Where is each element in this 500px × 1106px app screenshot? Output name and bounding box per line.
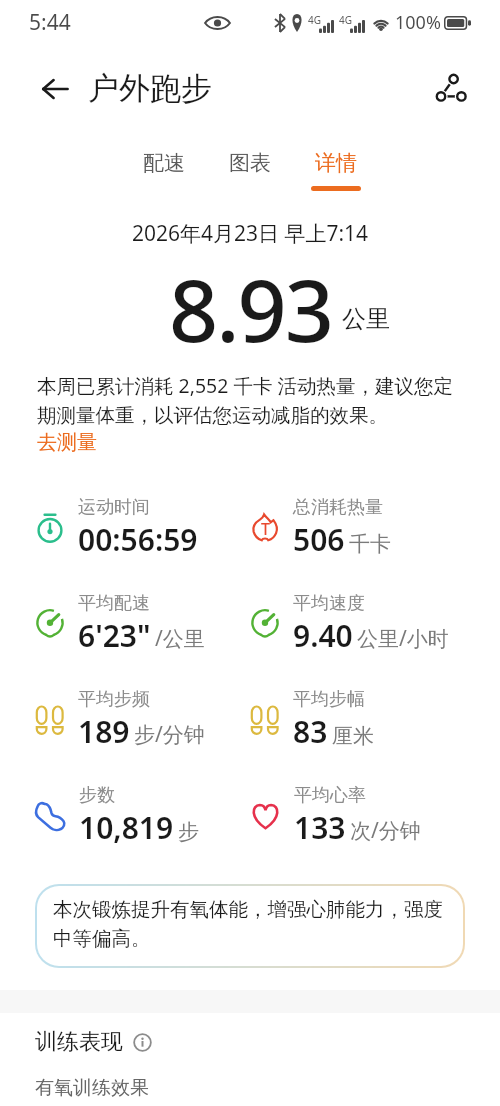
staticText: 506	[293, 519, 345, 560]
staticText: 8.93	[169, 250, 332, 356]
staticText: T	[261, 518, 270, 540]
staticText: 2026年4月23日 早上7:14	[0, 219, 500, 248]
staticText: 133	[294, 807, 346, 848]
button[interactable]: 平均配速	[35, 576, 250, 672]
button[interactable]: 平均步幅	[250, 672, 500, 768]
button[interactable]: 平均步频	[35, 672, 250, 768]
staticText: 配速	[143, 150, 185, 176]
button[interactable]: T	[250, 480, 500, 576]
staticText: 运动时间	[78, 496, 150, 519]
staticText: 00:56:59	[78, 519, 198, 560]
staticText: 训练表现	[35, 1028, 123, 1056]
button[interactable]: 运动时间	[35, 480, 250, 576]
staticText: 千卡	[349, 531, 391, 557]
staticText: 步	[178, 819, 199, 845]
staticText: 6'23"	[78, 615, 151, 656]
staticText: 图表	[229, 150, 271, 176]
staticText: 次/分钟	[350, 816, 421, 845]
staticText: 公里	[342, 304, 390, 334]
staticText: 公里/小时	[357, 624, 449, 653]
button[interactable]: 配速	[139, 150, 189, 191]
button[interactable]: 去测量	[37, 430, 97, 455]
staticText: 100%	[395, 10, 441, 35]
button[interactable]: 平均速度	[250, 576, 500, 672]
button[interactable]: 详情	[311, 150, 361, 191]
staticText: 详情	[315, 150, 357, 176]
button[interactable]: 训练表现	[35, 1028, 152, 1056]
button[interactable]: 本次锻炼提升有氧体能，增强心肺能力，强度中等偏高。	[37, 886, 463, 966]
staticText: 平均速度	[293, 592, 365, 615]
button[interactable]: 图表	[225, 150, 275, 191]
staticText: 总消耗热量	[293, 496, 383, 519]
staticText: 平均步频	[78, 688, 150, 711]
staticText: 83	[293, 711, 328, 752]
staticText: 户外跑步	[88, 69, 212, 108]
staticText: 步数	[79, 784, 115, 807]
staticText: 有氧训练效果	[35, 1076, 149, 1100]
staticText: 本次锻炼提升有氧体能，增强心肺能力，强度中等偏高。	[53, 897, 447, 951]
staticText: 本周已累计消耗 2,552 千卡 活动热量，建议您定期测量体重，以评估您运动减脂…	[37, 372, 463, 428]
staticText: /公里	[155, 624, 205, 653]
staticText: 平均步幅	[293, 688, 365, 711]
staticText: 平均配速	[78, 592, 150, 615]
staticText: 平均心率	[294, 784, 366, 807]
staticText: 厘米	[332, 723, 374, 749]
button[interactable]: 平均心率	[250, 768, 500, 864]
button[interactable]	[41, 75, 69, 103]
staticText: 4G	[308, 13, 321, 27]
staticText: 4G	[339, 13, 352, 27]
button[interactable]	[435, 73, 465, 103]
staticText: 189	[78, 711, 130, 752]
staticText: 步/分钟	[134, 720, 205, 749]
staticText: 10,819	[79, 807, 174, 848]
staticText: 9.40	[293, 615, 353, 656]
button[interactable]: 步数	[35, 768, 250, 864]
staticText: 5:44	[29, 8, 71, 37]
